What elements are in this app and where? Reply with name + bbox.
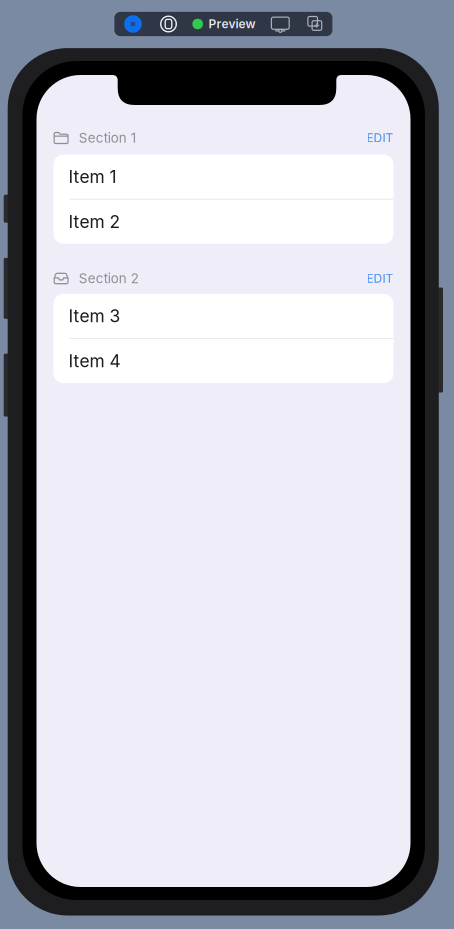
staticText: Item 1 — [68, 166, 116, 187]
button[interactable]: Item 3 — [53, 294, 393, 338]
staticText: Item 3 — [68, 306, 120, 326]
staticText: EDIT — [366, 271, 393, 285]
button[interactable]: Item 2 — [53, 200, 393, 244]
staticText: EDIT — [366, 131, 393, 145]
button[interactable]: Item 1 — [53, 154, 393, 199]
button[interactable]: Preview on device — [267, 12, 293, 36]
staticText: Preview — [209, 17, 256, 31]
staticText: Section 2 — [79, 270, 139, 286]
staticText: Section 1 — [79, 130, 136, 146]
button[interactable]: Preview — [192, 12, 256, 36]
button[interactable]: EDIT — [366, 271, 393, 285]
button[interactable]: Device settings — [155, 12, 181, 36]
button[interactable]: Item 4 — [53, 339, 393, 383]
staticText: Item 2 — [68, 211, 120, 232]
button[interactable]: Add preview — [302, 12, 328, 36]
staticText: Item 4 — [68, 351, 120, 371]
button[interactable]: Stop preview — [120, 12, 146, 36]
button[interactable]: EDIT — [366, 131, 393, 145]
